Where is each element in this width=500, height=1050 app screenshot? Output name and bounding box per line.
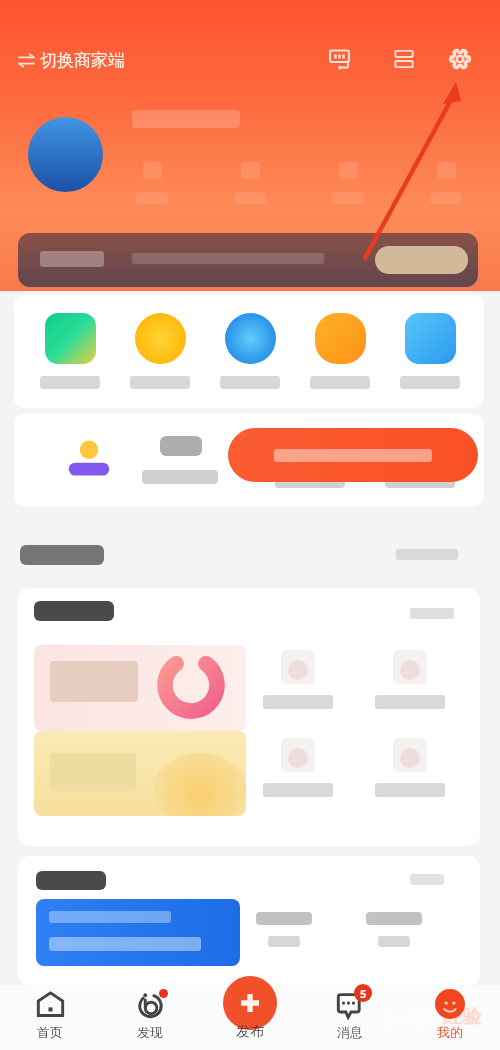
staticText: 发现 <box>137 1024 163 1040</box>
button[interactable]: 首页 <box>10 988 90 1040</box>
button[interactable] <box>306 313 374 389</box>
button[interactable] <box>36 899 240 966</box>
staticText: 经验 <box>443 1005 481 1029</box>
staticText: 我的 <box>437 1024 463 1040</box>
button[interactable] <box>318 162 378 204</box>
staticText: jingyan.baidu.com <box>381 1027 468 1041</box>
button[interactable] <box>18 233 478 287</box>
staticText: 发布 <box>236 1023 264 1041</box>
button[interactable]: Publish <box>223 976 277 1030</box>
button[interactable] <box>360 650 460 709</box>
button[interactable]: Settings <box>441 40 479 78</box>
button[interactable] <box>28 117 103 192</box>
button[interactable] <box>248 650 348 709</box>
button[interactable] <box>360 738 460 797</box>
button[interactable]: 发现 <box>110 988 190 1040</box>
button[interactable] <box>34 645 246 731</box>
button[interactable] <box>375 246 468 274</box>
staticText: 切换商家端 <box>40 50 125 71</box>
button[interactable]: 5 <box>310 988 390 1040</box>
button[interactable]: 我的 <box>410 988 490 1040</box>
button[interactable] <box>220 162 280 204</box>
button[interactable] <box>36 313 104 389</box>
button[interactable] <box>216 313 284 389</box>
staticText: 首页 <box>37 1024 63 1040</box>
staticText: 5 <box>360 986 367 1001</box>
button[interactable] <box>248 738 348 797</box>
staticText: Baidu <box>381 1004 441 1033</box>
button[interactable] <box>396 313 464 389</box>
staticText: 消息 <box>337 1024 363 1040</box>
button[interactable]: Customer service <box>320 40 358 78</box>
button[interactable]: 切换商家端 <box>18 44 125 77</box>
button[interactable] <box>416 162 476 204</box>
button[interactable] <box>228 428 478 482</box>
button[interactable] <box>126 313 194 389</box>
button[interactable]: Layout <box>385 40 423 78</box>
button[interactable] <box>122 162 182 204</box>
button[interactable] <box>34 731 246 816</box>
